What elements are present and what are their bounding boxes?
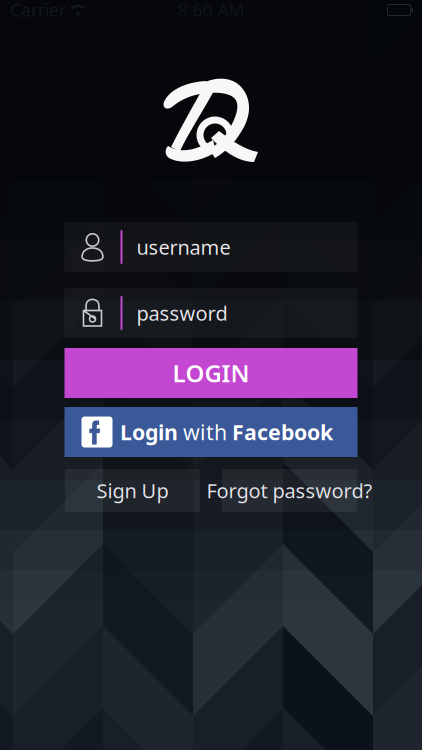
button[interactable]: Login: [64, 407, 357, 457]
staticText: Forgot password?: [206, 477, 372, 504]
staticText: username: [136, 234, 230, 260]
button[interactable]: password: [64, 288, 357, 338]
button[interactable]: username: [64, 222, 357, 272]
staticText: LOGIN: [172, 357, 249, 389]
staticText: with: [183, 418, 227, 446]
button[interactable]: Sign Up: [65, 469, 200, 512]
staticText: password: [136, 300, 227, 326]
staticText: Carrier: [10, 0, 66, 21]
button[interactable]: Forgot password?: [222, 469, 357, 512]
staticText: Login: [120, 418, 178, 446]
button[interactable]: LOGIN: [64, 348, 357, 398]
staticText: Sign Up: [96, 477, 168, 504]
staticText: 8:60 AM: [177, 0, 244, 21]
staticText: Facebook: [232, 418, 333, 446]
